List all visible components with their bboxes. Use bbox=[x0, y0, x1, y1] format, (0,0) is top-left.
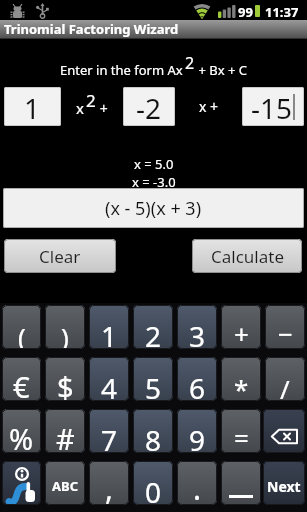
staticText: (x - 5)(x + 3) bbox=[105, 196, 202, 221]
button[interactable]: % bbox=[2, 409, 41, 453]
button[interactable]: − bbox=[265, 305, 305, 349]
staticText: + Bx + C bbox=[195, 61, 247, 79]
button[interactable]: / bbox=[265, 357, 305, 401]
staticText: 8 bbox=[145, 421, 162, 453]
button[interactable] bbox=[263, 409, 305, 453]
button[interactable]: + bbox=[221, 305, 261, 349]
staticText: 3 bbox=[189, 317, 206, 349]
staticText: + bbox=[96, 99, 108, 118]
staticText: 2 bbox=[145, 317, 162, 349]
staticText: ) bbox=[61, 319, 69, 349]
staticText: 6 bbox=[189, 369, 206, 401]
staticText: $ bbox=[57, 367, 74, 401]
staticText: − bbox=[278, 316, 293, 349]
button[interactable]: 1 bbox=[89, 305, 129, 349]
staticText: # bbox=[56, 419, 75, 453]
staticText: 2 bbox=[185, 52, 195, 74]
button[interactable]: -2 bbox=[123, 87, 175, 126]
staticText: Next bbox=[267, 477, 301, 496]
staticText: 5 bbox=[145, 369, 162, 401]
button[interactable]: € bbox=[2, 357, 41, 401]
staticText: € bbox=[13, 367, 30, 401]
staticText: x + bbox=[199, 97, 219, 116]
button[interactable]: 5 bbox=[133, 357, 173, 401]
staticText: * bbox=[234, 371, 249, 401]
button[interactable]: 2 bbox=[133, 305, 173, 349]
staticText: 1 bbox=[101, 317, 118, 349]
staticText: Clear bbox=[39, 245, 81, 268]
button[interactable]: Calculate bbox=[192, 239, 302, 273]
staticText: % bbox=[9, 419, 34, 453]
staticText: 11:37 bbox=[265, 3, 299, 21]
button[interactable]: 3 bbox=[177, 305, 217, 349]
staticText: x bbox=[76, 98, 84, 118]
staticText: 0 bbox=[145, 473, 162, 505]
button[interactable]: Clear bbox=[4, 239, 116, 273]
button[interactable]: ABC bbox=[45, 461, 85, 505]
staticText: = bbox=[234, 420, 249, 453]
staticText: Enter in the form Ax bbox=[60, 61, 183, 79]
staticText: 99 bbox=[238, 3, 253, 21]
button[interactable]: ( bbox=[2, 305, 41, 349]
button[interactable]: -15 bbox=[242, 87, 304, 126]
staticText: . bbox=[193, 468, 202, 505]
staticText: x = -3.0 bbox=[132, 173, 176, 191]
staticText: 2 bbox=[86, 89, 96, 112]
staticText: 9 bbox=[189, 421, 206, 453]
staticText: 1 bbox=[24, 89, 41, 127]
button[interactable]: Next bbox=[263, 461, 305, 505]
staticText: ABC bbox=[52, 477, 78, 495]
button[interactable]: = bbox=[221, 409, 261, 453]
staticText: Trinomial Factoring Wizard bbox=[4, 20, 179, 38]
button[interactable]: 8 bbox=[133, 409, 173, 453]
staticText: 7 bbox=[101, 421, 118, 453]
button[interactable]: ) bbox=[45, 305, 85, 349]
button[interactable]: , bbox=[89, 461, 129, 505]
staticText: Calculate bbox=[211, 245, 284, 268]
button[interactable]: 6 bbox=[177, 357, 217, 401]
button[interactable]: . bbox=[177, 461, 217, 505]
staticText: , bbox=[105, 468, 114, 505]
button[interactable]: 4 bbox=[89, 357, 129, 401]
button[interactable]: * bbox=[221, 357, 261, 401]
staticText: / bbox=[280, 371, 290, 401]
button[interactable] bbox=[2, 461, 41, 505]
button[interactable]: 0 bbox=[133, 461, 173, 505]
button[interactable] bbox=[221, 461, 261, 505]
button[interactable]: # bbox=[45, 409, 85, 453]
staticText: -2 bbox=[136, 89, 162, 127]
button[interactable]: $ bbox=[45, 357, 85, 401]
button[interactable]: 7 bbox=[89, 409, 129, 453]
staticText: x = 5.0 bbox=[134, 155, 174, 173]
button[interactable]: 9 bbox=[177, 409, 217, 453]
staticText: 4 bbox=[101, 369, 118, 401]
staticText: + bbox=[234, 316, 249, 349]
staticText: -15 bbox=[251, 89, 293, 127]
staticText: ( bbox=[18, 319, 26, 349]
button[interactable]: 1 bbox=[4, 87, 61, 126]
